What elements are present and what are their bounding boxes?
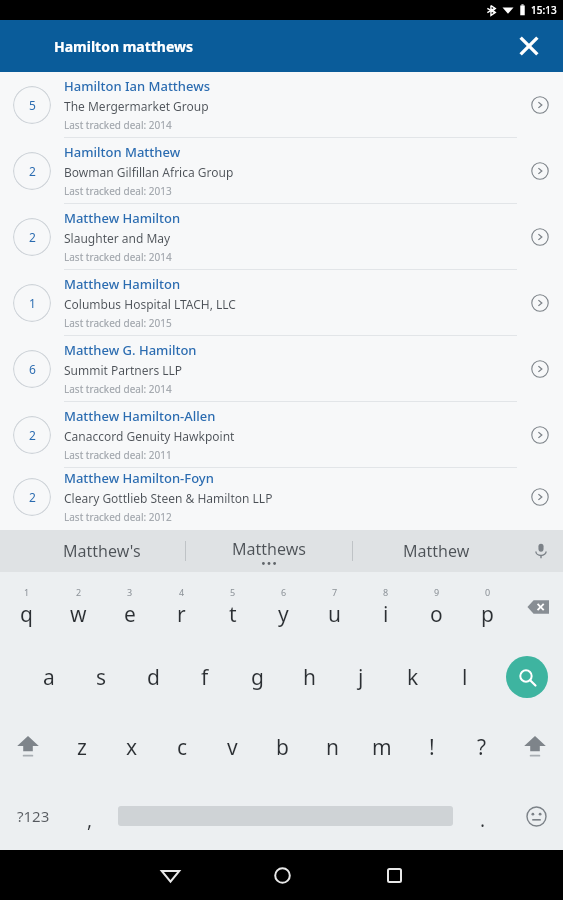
button[interactable]: Recents [338,850,450,900]
staticText: Hamilton Ian Matthews [64,77,211,95]
button[interactable]: 4 [156,572,207,642]
staticText: ! [429,733,435,762]
staticText: 8 [383,586,389,598]
button[interactable]: Space [114,782,457,850]
button[interactable]: 6 [0,336,563,401]
button[interactable]: b [257,712,307,782]
staticText: 4 [179,586,185,598]
button[interactable]: Matthews [232,538,306,560]
staticText: Last tracked deal: 2013 [64,184,172,198]
staticText: e [124,600,136,629]
button[interactable]: a [22,642,75,712]
button[interactable]: Search [491,642,563,712]
button[interactable]: 2 [0,138,563,203]
button[interactable]: 1 [0,572,52,642]
button[interactable]: , [66,782,114,850]
button[interactable]: h [283,642,335,712]
staticText: 15:13 [531,3,557,17]
button[interactable]: ? [457,712,507,782]
button[interactable]: Shift [0,712,56,782]
button[interactable]: m [357,712,407,782]
staticText: 1 [29,295,36,311]
button[interactable]: 1 [0,270,563,335]
staticText: 2 [29,489,36,505]
button[interactable]: f [179,642,231,712]
staticText: g [251,663,264,692]
staticText: c [177,733,188,762]
staticText: Last tracked deal: 2015 [64,316,172,330]
staticText: n [326,733,339,762]
button[interactable]: 3 [104,572,156,642]
button[interactable]: Home [226,850,338,900]
staticText: 1 [24,586,30,598]
button[interactable]: l [439,642,491,712]
staticText: ?123 [17,806,50,826]
button[interactable]: 0 [462,572,513,642]
staticText: 5 [29,97,36,113]
button[interactable]: Backspace [513,572,563,642]
staticText: Matthew Hamilton [64,275,181,293]
other: Open details [517,468,563,525]
other: Open details [517,402,563,467]
staticText: 0 [485,586,491,598]
button[interactable]: k [387,642,439,712]
staticText: Last tracked deal: 2014 [64,382,172,396]
button[interactable]: Matthew's [18,530,185,572]
button[interactable]: Matthew [353,530,519,572]
staticText: x [126,733,138,762]
staticText: w [70,600,87,629]
button[interactable]: c [157,712,207,782]
button[interactable]: g [231,642,283,712]
staticText: m [372,733,392,762]
staticText: Last tracked deal: 2014 [64,118,172,132]
button[interactable]: 7 [309,572,360,642]
staticText: Matthew Hamilton-Allen [64,407,216,425]
button[interactable]: s [75,642,127,712]
staticText: b [276,733,289,762]
staticText: ? [477,733,487,762]
staticText: Matthews [232,538,306,560]
button[interactable]: 2 [0,204,563,269]
staticText: 2 [76,586,82,598]
other: Open details [517,204,563,269]
button[interactable]: j [335,642,387,712]
staticText: Columbus Hospital LTACH, LLC [64,296,236,312]
button[interactable]: d [127,642,179,712]
staticText: 5 [230,586,236,598]
button[interactable]: Shift [507,712,563,782]
staticText: 9 [434,586,440,598]
staticText: z [77,733,87,762]
staticText: 3 [127,586,133,598]
staticText: a [43,663,55,692]
button[interactable]: ?123 [0,782,66,850]
button[interactable]: n [307,712,357,782]
staticText: v [227,733,238,762]
button[interactable]: 2 [52,572,104,642]
staticText: Last tracked deal: 2011 [64,448,172,462]
button[interactable]: . [457,782,509,850]
button[interactable]: 2 [0,402,563,467]
staticText: Last tracked deal: 2014 [64,250,172,264]
button[interactable]: 8 [360,572,411,642]
button[interactable]: ! [407,712,457,782]
staticText: Canaccord Genuity Hawkpoint [64,428,235,444]
button[interactable]: 5 [207,572,258,642]
staticText: 2 [29,163,36,179]
staticText: j [358,663,364,692]
button[interactable]: z [56,712,107,782]
staticText: p [481,600,494,629]
button[interactable]: 2 [0,468,563,525]
button[interactable]: v [207,712,257,782]
button[interactable]: Close [509,26,549,66]
staticText: t [229,600,237,629]
button[interactable]: x [107,712,157,782]
staticText: 6 [29,361,36,377]
button[interactable]: 5 [0,72,563,137]
button[interactable]: Back [114,850,226,900]
button[interactable]: 9 [411,572,462,642]
staticText: Matthew [403,540,470,562]
button[interactable]: Emoji [509,782,563,850]
button[interactable]: Hamilton matthews [0,20,563,72]
button[interactable]: 6 [258,572,309,642]
button[interactable]: Voice input [519,530,563,572]
